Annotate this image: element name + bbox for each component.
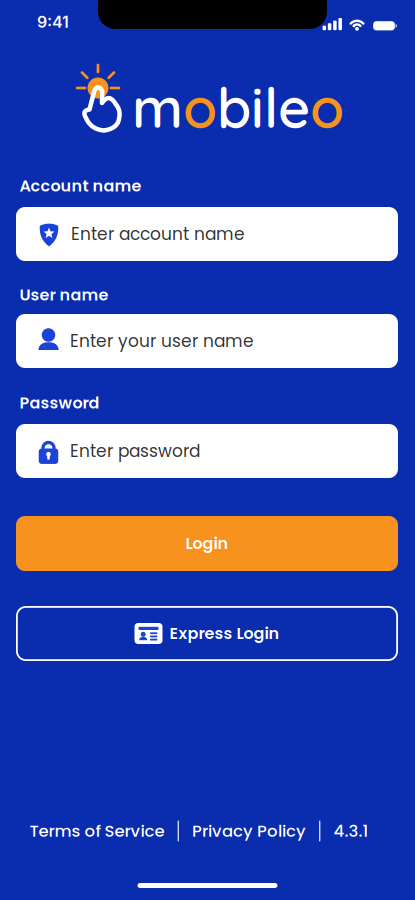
staticText: Login (185, 532, 228, 555)
button[interactable]: Login (16, 516, 398, 571)
staticText: Account name (19, 175, 141, 197)
staticText: o (183, 72, 217, 142)
staticText: 4.3.1 (333, 819, 368, 842)
staticText: Password (19, 392, 99, 414)
staticText: Privacy Policy (192, 819, 306, 842)
button[interactable]: Terms of Service (30, 819, 165, 842)
staticText: Enter password (70, 439, 200, 463)
staticText: m (132, 72, 183, 142)
staticText: Enter your user name (70, 329, 254, 353)
staticText: Express Login (169, 622, 279, 645)
staticText: bile (217, 72, 310, 142)
staticText: o (310, 72, 344, 142)
staticText: Enter account name (71, 222, 245, 246)
staticText: User name (19, 284, 108, 306)
button[interactable]: Privacy Policy (192, 819, 306, 842)
staticText: Terms of Service (30, 819, 165, 842)
button[interactable]: Enter your user name (16, 314, 398, 368)
button[interactable]: Enter account name (16, 207, 398, 261)
button[interactable]: Express Login (16, 606, 398, 661)
staticText: 9:41 (37, 12, 69, 32)
button[interactable]: Enter password (16, 424, 398, 478)
